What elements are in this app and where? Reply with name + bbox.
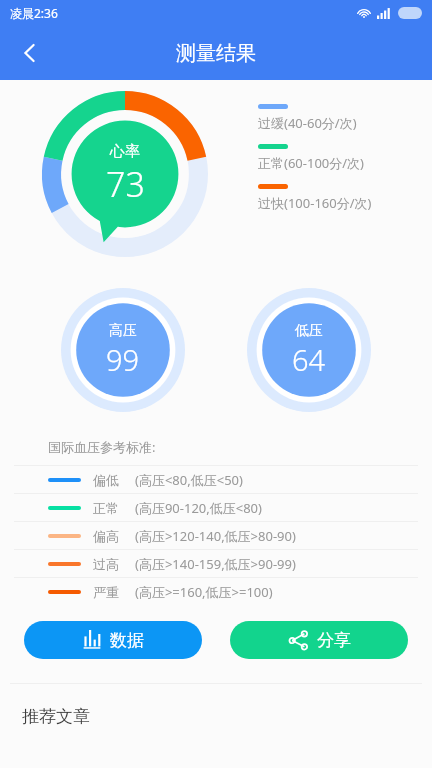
staticText: 过高: [93, 556, 135, 572]
staticText: 低压: [295, 322, 323, 340]
staticText: (高压>140-159,低压>90-99): [135, 555, 296, 573]
button[interactable]: Back: [8, 31, 52, 75]
staticText: 测量结果: [176, 41, 256, 66]
staticText: 正常(60-100分/次): [258, 154, 365, 172]
staticText: 严重: [93, 584, 135, 600]
staticText: 正常: [93, 500, 135, 516]
staticText: 高压: [109, 322, 137, 340]
button[interactable]: 分享: [230, 621, 408, 659]
staticText: (高压>120-140,低压>80-90): [135, 527, 296, 545]
staticText: 分享: [317, 630, 351, 651]
staticText: 99: [106, 340, 140, 379]
staticText: 国际血压参考标准:: [48, 438, 156, 456]
staticText: (高压>=160,低压>=100): [135, 583, 273, 601]
staticText: 推荐文章: [22, 706, 90, 727]
button[interactable]: 数据: [24, 621, 202, 659]
staticText: 过快(100-160分/次): [258, 194, 372, 212]
staticText: 偏低: [93, 472, 135, 488]
staticText: (高压<80,低压<50): [135, 471, 243, 489]
staticText: 凌晨2:36: [10, 5, 58, 21]
staticText: 心率: [110, 142, 140, 161]
staticText: (高压90-120,低压<80): [135, 499, 262, 517]
staticText: 偏高: [93, 528, 135, 544]
staticText: 过缓(40-60分/次): [258, 114, 357, 132]
staticText: 64: [292, 340, 326, 379]
staticText: 73: [106, 161, 145, 207]
staticText: 数据: [110, 630, 144, 651]
